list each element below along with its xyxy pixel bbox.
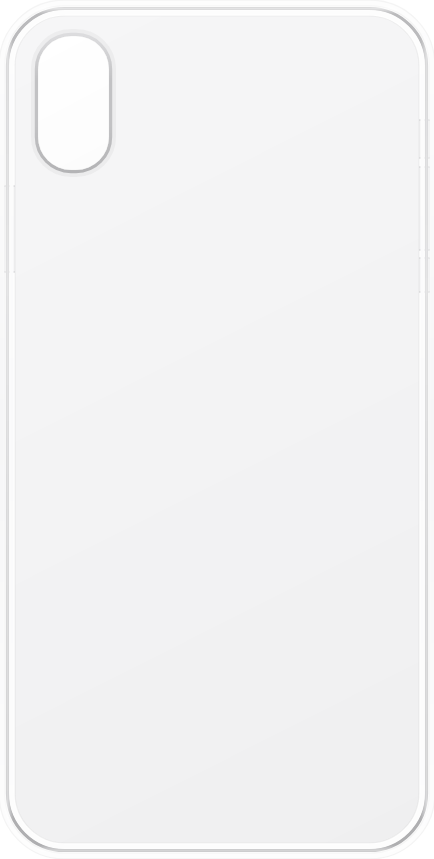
button[interactable]: Transparent phone case product photo	[0, 0, 434, 859]
